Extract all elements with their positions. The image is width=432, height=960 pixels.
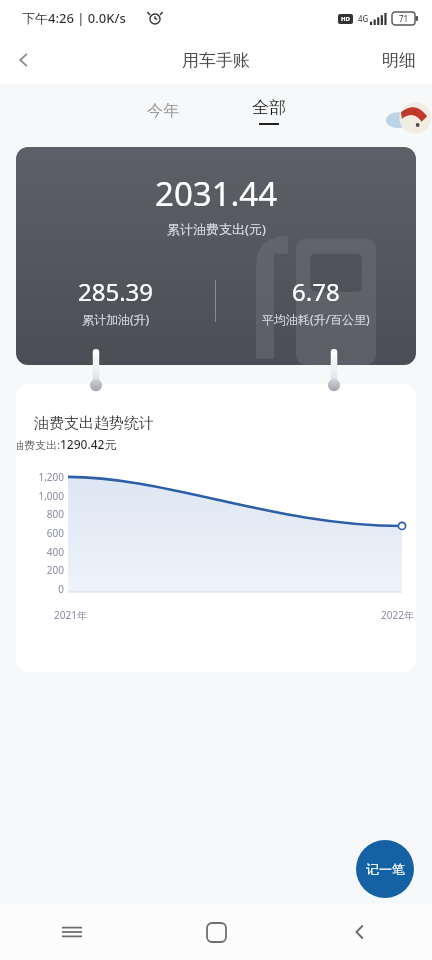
staticText: 200 — [46, 563, 64, 577]
staticText: 4G — [358, 13, 369, 24]
button[interactable]: 2031.44 — [16, 147, 416, 365]
staticText: 6.78 — [292, 275, 340, 308]
staticText: 平均油耗(升/百公里) — [262, 311, 370, 327]
button[interactable]: Home — [144, 904, 288, 960]
staticText: 累计加油(升) — [82, 311, 150, 327]
staticText: 600 — [46, 526, 64, 540]
staticText: 1,000 — [38, 489, 64, 503]
staticText: 2021年 — [54, 608, 87, 622]
staticText: 285.39 — [78, 275, 154, 308]
button[interactable]: 今年 — [115, 88, 211, 134]
button[interactable]: 明细 — [382, 50, 416, 71]
button[interactable]: 全部 — [221, 88, 317, 134]
button[interactable]: Recents — [0, 904, 144, 960]
staticText: 全部 — [252, 97, 286, 118]
staticText: 下午4:26 | 0.0K/s — [22, 9, 126, 27]
button[interactable]: Back — [0, 36, 48, 84]
staticText: 用车手账 — [182, 50, 250, 71]
staticText: 油费支出: — [16, 437, 60, 452]
staticText: 71 — [399, 13, 409, 24]
staticText: 今年 — [147, 101, 179, 121]
staticText: 0 — [58, 582, 64, 596]
staticText: 2022年 — [381, 608, 414, 622]
staticText: 油费支出趋势统计 — [34, 414, 154, 433]
button[interactable]: 记一笔 — [356, 840, 414, 898]
button[interactable]: 油费支出趋势统计 — [16, 384, 416, 672]
staticText: 记一笔 — [366, 861, 405, 877]
staticText: 800 — [46, 507, 64, 521]
staticText: 累计油费支出(元) — [167, 220, 266, 238]
staticText: 明细 — [382, 50, 416, 71]
staticText: 1,200 — [38, 470, 64, 484]
button[interactable]: Back — [288, 904, 432, 960]
staticText: 400 — [46, 545, 64, 559]
staticText: 2031.44 — [155, 171, 278, 216]
staticText: HD — [341, 15, 350, 23]
staticText: 1290.42元 — [60, 436, 117, 452]
